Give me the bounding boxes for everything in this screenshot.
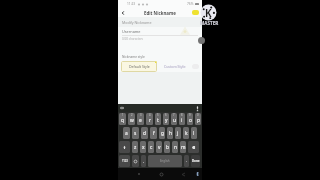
button[interactable]: f: [150, 127, 157, 139]
button[interactable]: Keyboard settings: [120, 106, 124, 110]
button[interactable]: ?123: [119, 155, 130, 167]
staticText: j: [177, 130, 179, 137]
staticText: 11:23: [127, 2, 136, 6]
button[interactable]: Recent apps: [136, 171, 142, 177]
button[interactable]: 9: [187, 113, 193, 125]
button[interactable]: k: [183, 127, 189, 139]
button[interactable]: 8: [179, 113, 185, 125]
button[interactable]: Emoji: [132, 155, 139, 167]
button[interactable]: Back: [118, 8, 127, 17]
staticText: Edit Nickname: [144, 10, 176, 16]
button[interactable]: Voice input: [196, 106, 199, 111]
staticText: l: [193, 130, 195, 137]
staticText: Default Style: [129, 64, 150, 69]
staticText: a: [125, 130, 128, 137]
staticText: English: [160, 159, 170, 163]
button[interactable]: Confirm: [192, 10, 199, 15]
button[interactable]: More styles: [192, 64, 199, 69]
button[interactable]: h: [167, 127, 173, 139]
button[interactable]: z: [132, 141, 138, 153]
staticText: 1: [122, 113, 124, 117]
staticText: 3: [140, 113, 142, 117]
button[interactable]: a: [123, 127, 130, 139]
staticText: r: [149, 117, 151, 124]
staticText: i: [181, 117, 183, 124]
button[interactable]: n: [172, 141, 178, 153]
staticText: t: [157, 117, 159, 124]
staticText: d: [143, 130, 146, 137]
staticText: 4: [149, 113, 151, 117]
staticText: q: [121, 117, 124, 124]
staticText: e: [139, 117, 142, 124]
staticText: k: [185, 130, 188, 137]
staticText: MASTER: [200, 20, 219, 26]
button[interactable]: d: [141, 127, 148, 139]
button[interactable]: v: [156, 141, 162, 153]
staticText: 9: [189, 113, 191, 117]
button[interactable]: Bluetooth: [196, 172, 199, 176]
staticText: x: [142, 144, 145, 151]
button[interactable]: Done: [191, 155, 200, 167]
button[interactable]: x: [140, 141, 146, 153]
button[interactable]: 3: [137, 113, 144, 125]
button[interactable]: j: [175, 127, 181, 139]
button[interactable]: Shift: [119, 141, 130, 153]
staticText: Modify Nickname: [122, 20, 152, 25]
button[interactable]: b: [164, 141, 170, 153]
staticText: s: [134, 130, 137, 137]
staticText: w: [130, 117, 134, 124]
staticText: 0: [197, 113, 199, 117]
staticText: m: [181, 144, 186, 151]
button[interactable]: g: [159, 127, 165, 139]
staticText: z: [134, 144, 137, 151]
staticText: o: [189, 117, 192, 124]
button[interactable]: 4: [146, 113, 153, 125]
staticText: Nickname style: [122, 55, 145, 59]
button[interactable]: 2: [128, 113, 135, 125]
staticText: v: [158, 144, 161, 151]
staticText: ,: [143, 159, 144, 163]
button[interactable]: s: [132, 127, 139, 139]
staticText: 7: [173, 113, 175, 117]
button[interactable]: 1: [119, 113, 126, 125]
staticText: 8: [181, 113, 183, 117]
staticText: 76%: [187, 2, 194, 6]
staticText: f: [153, 130, 155, 137]
button[interactable]: Home: [158, 171, 164, 177]
button[interactable]: Default Style: [121, 61, 157, 72]
staticText: Done: [192, 159, 200, 163]
button[interactable]: 6: [163, 113, 169, 125]
button[interactable]: 0: [195, 113, 201, 125]
staticText: .: [186, 159, 187, 163]
staticText: g: [161, 130, 164, 137]
button[interactable]: Custom Style: [164, 61, 186, 72]
staticText: n: [174, 144, 177, 151]
staticText: h: [169, 130, 172, 137]
button[interactable]: 7: [171, 113, 177, 125]
staticText: u: [173, 117, 176, 124]
button[interactable]: Space: [148, 155, 182, 167]
button[interactable]: l: [191, 127, 197, 139]
staticText: p: [197, 117, 200, 124]
staticText: 5: [157, 113, 159, 117]
staticText: ?123: [122, 159, 128, 163]
staticText: 6: [165, 113, 167, 117]
button[interactable]: ,: [141, 155, 146, 167]
button[interactable]: Back: [180, 171, 186, 177]
button[interactable]: m: [180, 141, 186, 153]
staticText: 0/20 characters: [122, 37, 143, 41]
staticText: b: [166, 144, 169, 151]
staticText: c: [150, 144, 153, 151]
button[interactable]: 5: [155, 113, 161, 125]
staticText: K: [205, 6, 212, 20]
staticText: Custom Style: [164, 64, 186, 69]
button[interactable]: Backspace: [188, 141, 199, 153]
button[interactable]: .: [184, 155, 189, 167]
staticText: Username: [122, 29, 141, 34]
staticText: 2: [131, 113, 133, 117]
staticText: y: [165, 117, 168, 124]
button[interactable]: c: [148, 141, 154, 153]
